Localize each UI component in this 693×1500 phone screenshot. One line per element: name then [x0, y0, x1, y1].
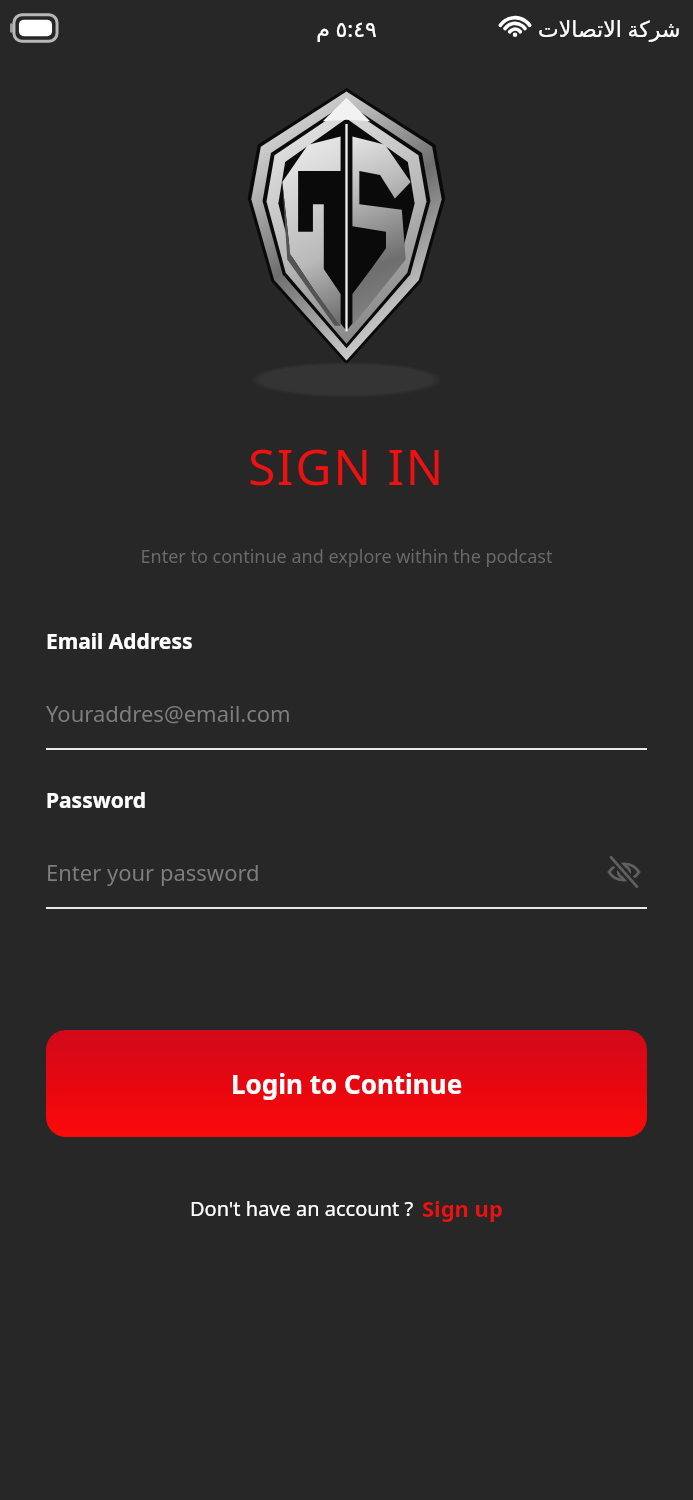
staticText: Login to Continue — [231, 1066, 463, 1101]
staticText: Don't have an account ? — [190, 1195, 414, 1222]
staticText: Enter to continue and explore within the… — [0, 544, 693, 569]
button[interactable]: Login to Continue — [46, 1030, 647, 1137]
button[interactable]: Show password — [601, 849, 647, 895]
staticText: Email Address — [46, 627, 193, 656]
staticText: Youraddres@email.com — [46, 698, 291, 728]
button[interactable]: Youraddres@email.com — [46, 690, 647, 736]
staticText: Password — [46, 786, 147, 815]
staticText: SIGN IN — [0, 432, 693, 500]
staticText: Sign up — [422, 1193, 503, 1223]
staticText: شركة الاتصالات — [538, 13, 681, 43]
staticText: Enter your password — [46, 857, 260, 887]
staticText: ٥:٤٩ م — [316, 13, 377, 43]
button[interactable]: Enter your password — [46, 849, 601, 895]
button[interactable]: Sign up — [422, 1193, 503, 1223]
